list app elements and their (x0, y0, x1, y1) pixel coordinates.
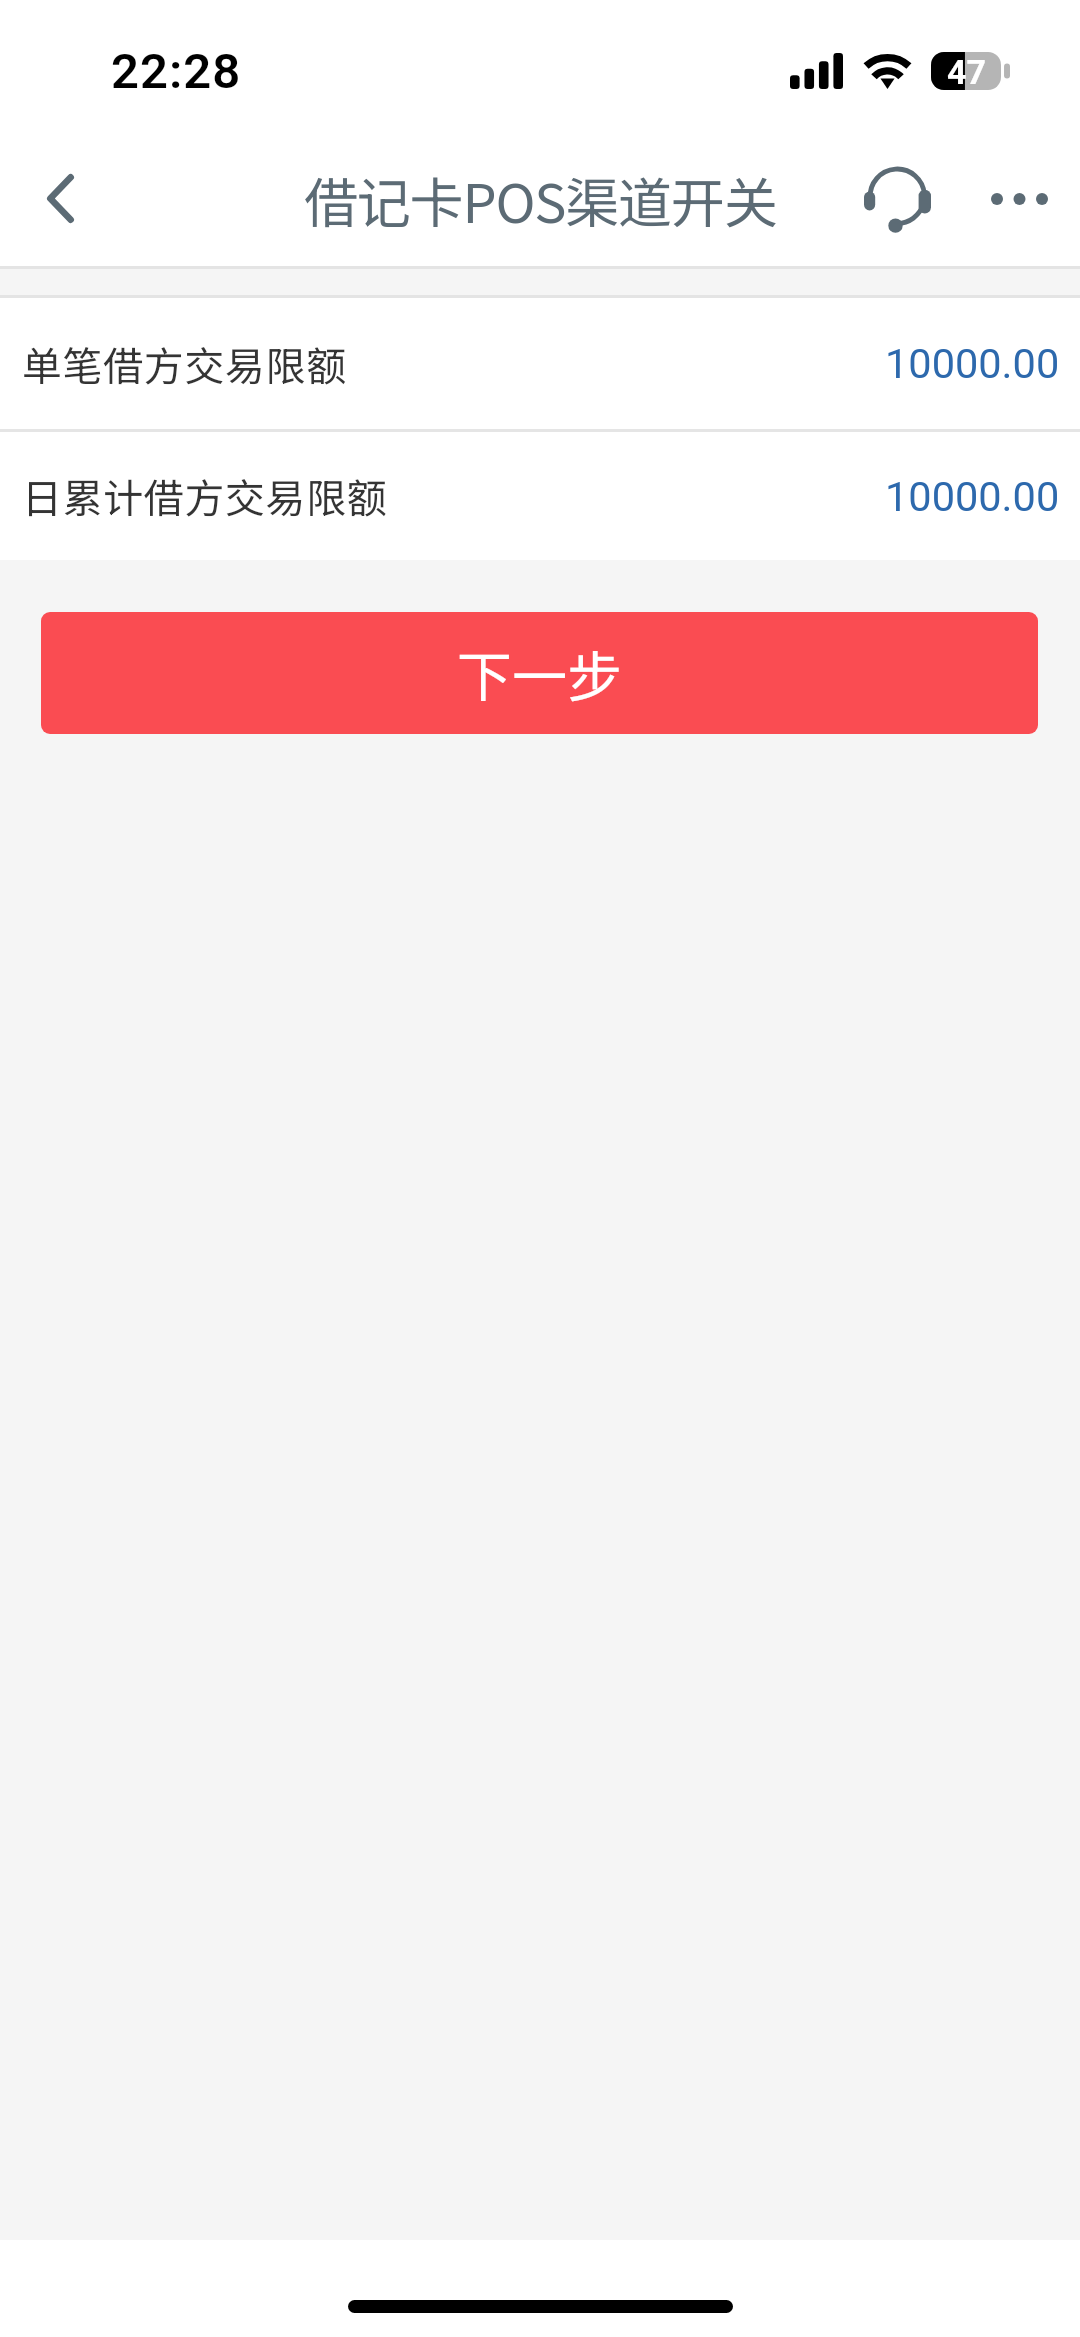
button[interactable]: Customer service (840, 130, 955, 264)
staticText: 47 (947, 52, 987, 90)
button[interactable]: More options (961, 130, 1077, 264)
staticText: 22:28 (111, 43, 242, 100)
staticText: 10000.00 (885, 472, 1060, 521)
staticText: 单笔借方交易限额 (22, 335, 347, 393)
staticText: 10000.00 (885, 339, 1060, 388)
staticText: 日累计借方交易限额 (22, 467, 388, 525)
button[interactable]: 下一步 (41, 612, 1038, 734)
staticText: 借记卡POS渠道开关 (304, 160, 777, 238)
button[interactable]: Back (0, 130, 120, 264)
button[interactable]: 单笔借方交易限额 (0, 298, 1080, 429)
button[interactable]: 日累计借方交易限额 (0, 432, 1080, 560)
staticText: 下一步 (457, 633, 623, 713)
